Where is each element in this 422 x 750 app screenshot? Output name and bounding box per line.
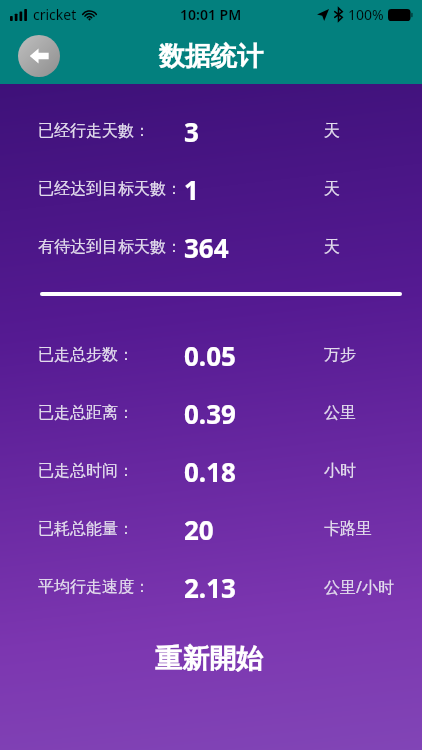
staticText: 3 (184, 114, 199, 149)
staticText: 2.13 (184, 570, 236, 605)
staticText: 100% (348, 5, 384, 24)
staticText: 天 (324, 237, 340, 257)
staticText: 平均行走速度： (38, 577, 150, 597)
button[interactable]: Back (18, 35, 60, 77)
staticText: 364 (184, 230, 229, 265)
staticText: 数据统计 (159, 40, 263, 73)
staticText: 1 (184, 172, 199, 207)
staticText: cricket (33, 5, 77, 24)
staticText: 0.39 (184, 396, 236, 431)
staticText: 0.18 (184, 454, 236, 489)
staticText: 公里 (324, 403, 356, 423)
button[interactable]: 重新開始 (0, 632, 422, 686)
staticText: 已经达到目标天數： (38, 179, 182, 199)
staticText: 天 (324, 121, 340, 141)
staticText: 已经行走天數： (38, 121, 150, 141)
staticText: 已耗总能量： (38, 519, 134, 539)
staticText: 重新開始 (155, 642, 263, 676)
staticText: 已走总距离： (38, 403, 134, 423)
staticText: 万步 (324, 345, 356, 365)
staticText: 有待达到目标天數： (38, 237, 182, 257)
staticText: 公里/小时 (324, 576, 394, 598)
staticText: 0.05 (184, 338, 236, 373)
staticText: 已走总步数： (38, 345, 134, 365)
staticText: 已走总时间： (38, 461, 134, 481)
staticText: 天 (324, 179, 340, 199)
staticText: 卡路里 (324, 519, 372, 539)
staticText: 20 (184, 512, 214, 547)
staticText: 10:01 PM (180, 5, 242, 24)
staticText: 小时 (324, 461, 356, 481)
